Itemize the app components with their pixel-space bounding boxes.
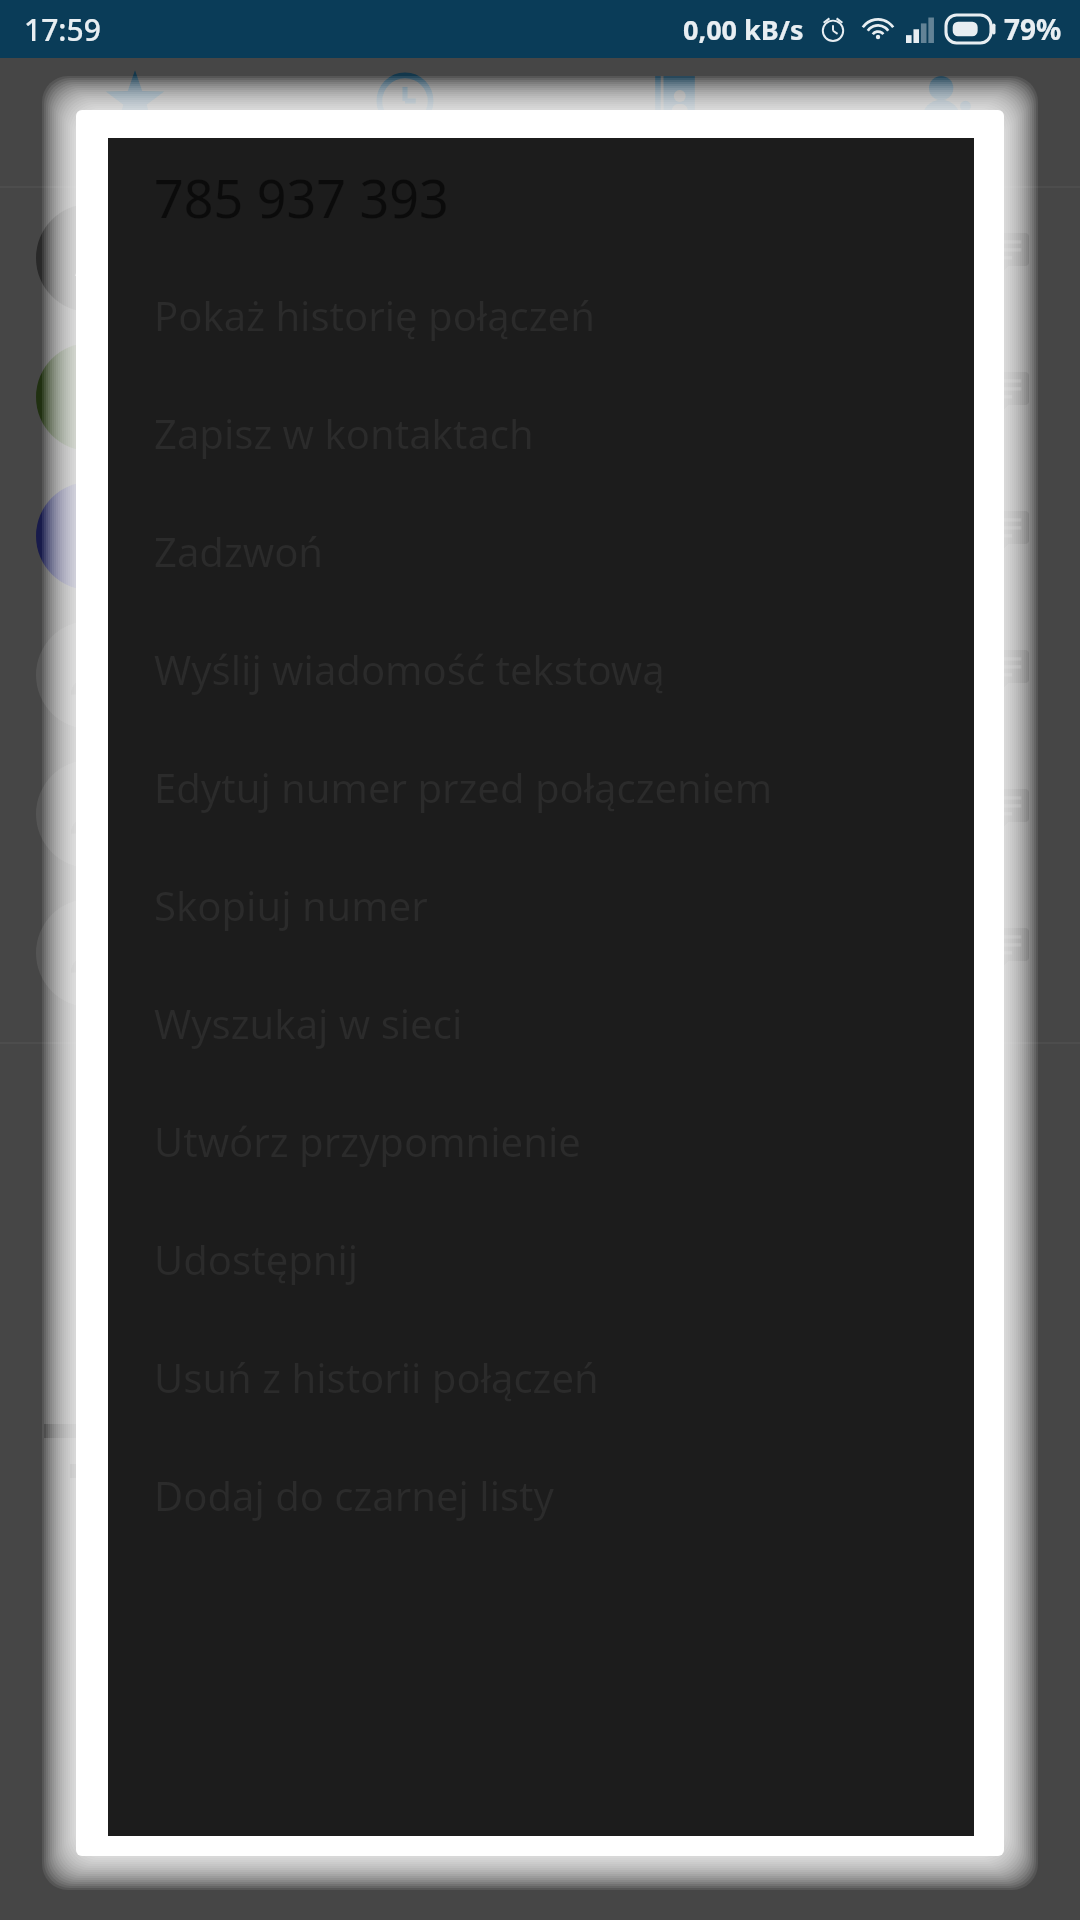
staticText: A: [75, 227, 105, 290]
staticText: Dodaj do czarnej listy: [154, 1468, 554, 1522]
button[interactable]: Send message: [984, 926, 1038, 980]
staticText: 0,00 kB/s: [683, 11, 804, 48]
button[interactable]: Send message: [984, 509, 1038, 563]
staticText: Zadzwoń: [154, 524, 324, 578]
button[interactable]: Send message: [984, 787, 1038, 841]
staticText: Skopiuj numer: [154, 878, 428, 932]
button[interactable]: Send message: [0, 744, 1080, 883]
button[interactable]: Contacts: [540, 58, 810, 180]
button[interactable]: Send message: [0, 883, 1080, 1022]
staticText: Zapisz w kontaktach: [154, 406, 534, 460]
button[interactable]: Send message: [984, 370, 1038, 424]
button[interactable]: Call log: [270, 58, 540, 180]
staticText: 79%: [1004, 10, 1062, 48]
button[interactable]: Groups: [810, 58, 1080, 180]
staticText: Wyślij wiadomość tekstową: [154, 642, 665, 696]
staticText: Pokaż historię połączeń: [154, 288, 595, 342]
staticText: 17:59: [24, 9, 101, 50]
staticText: Edytuj numer przed połączeniem: [154, 760, 773, 814]
staticText: Utwórz przypomnienie: [154, 1114, 581, 1168]
staticText: Usuń z historii połączeń: [154, 1350, 599, 1404]
button[interactable]: S: [0, 327, 1080, 466]
button[interactable]: Send message: [984, 231, 1038, 285]
button[interactable]: Send message: [984, 648, 1038, 702]
button[interactable]: A: [0, 188, 1080, 327]
staticText: Wyszukaj w sieci: [154, 996, 463, 1050]
button[interactable]: Favourites: [0, 58, 270, 180]
button[interactable]: T: [0, 466, 1080, 605]
staticText: 785 937 393: [154, 162, 449, 233]
staticText: Udostępnij: [154, 1232, 359, 1286]
button[interactable]: Send message: [0, 605, 1080, 744]
